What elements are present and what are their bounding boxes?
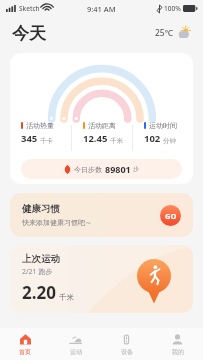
button[interactable]: 25℃ (155, 26, 191, 40)
staticText: 今天 (12, 23, 46, 44)
button[interactable]: 运动 (50, 328, 101, 360)
staticText: 12.45 (83, 132, 108, 145)
staticText: 千卡 (40, 137, 53, 145)
staticText: 运动时间 (149, 121, 177, 130)
staticText: 89801 (105, 163, 131, 175)
staticText: 运动 (70, 348, 82, 356)
staticText: 345 (21, 132, 38, 145)
staticText: 25℃ (155, 27, 174, 39)
other: Weather (177, 26, 191, 40)
staticText: 首页 (19, 348, 31, 356)
staticText: 2/21 跑步 (22, 267, 53, 277)
button[interactable]: 设备 (101, 328, 152, 360)
staticText: GO (165, 211, 177, 221)
staticText: 上次运动 (22, 253, 60, 265)
staticText: 快来添加健康习惯吧～ (22, 218, 92, 227)
button[interactable]: 活动热量 (10, 53, 193, 184)
staticText: 千米 (110, 137, 123, 145)
staticText: 2.20 (22, 281, 56, 304)
staticText: 今日步数 (74, 165, 102, 174)
button[interactable]: 首页 (0, 328, 50, 360)
staticText: 我的 (172, 348, 184, 356)
staticText: 千米 (59, 293, 74, 302)
staticText: 102 (144, 132, 161, 145)
button[interactable]: 今日步数 (21, 159, 182, 179)
button[interactable]: 我的 (152, 328, 203, 360)
staticText: 活动距离 (88, 121, 116, 130)
staticText: 分钟 (163, 137, 176, 145)
staticText: 9:41 AM (87, 4, 116, 14)
staticText: 健康习惯 (22, 203, 60, 215)
staticText: Sketch (19, 4, 40, 13)
button[interactable]: 上次运动 (10, 245, 193, 313)
button[interactable]: GO (160, 205, 181, 226)
button[interactable]: 健康习惯 (10, 193, 193, 237)
staticText: 100% (164, 4, 181, 13)
staticText: 活动热量 (26, 121, 54, 130)
staticText: 设备 (121, 348, 133, 356)
staticText: 步 (133, 165, 139, 173)
